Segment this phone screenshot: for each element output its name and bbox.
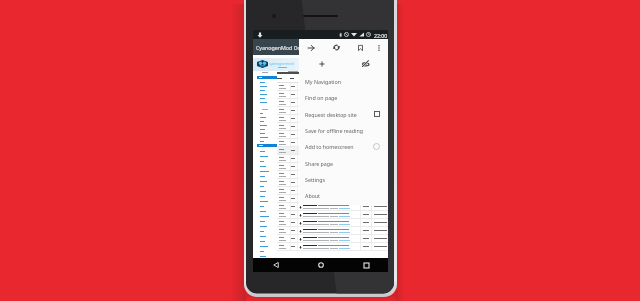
- button[interactable]: [277, 155, 388, 162]
- staticText: Add to homescreen: [305, 143, 354, 150]
- button[interactable]: Home: [313, 258, 329, 272]
- button[interactable]: Request desktop site: [299, 106, 388, 122]
- button[interactable]: [277, 171, 388, 178]
- button[interactable]: Add to homescreen: [299, 138, 388, 154]
- button[interactable]: [277, 195, 388, 202]
- button[interactable]: Share page: [299, 155, 388, 171]
- staticText: Settings: [305, 176, 326, 183]
- button[interactable]: Incognito tab: [357, 56, 375, 72]
- button[interactable]: [277, 163, 388, 170]
- button[interactable]: [277, 203, 388, 210]
- button[interactable]: [277, 187, 388, 194]
- button[interactable]: [277, 147, 388, 154]
- button[interactable]: [277, 91, 388, 98]
- button[interactable]: About: [299, 187, 388, 203]
- staticText: About: [305, 192, 321, 199]
- button[interactable]: Settings: [299, 171, 388, 187]
- button[interactable]: Back: [268, 258, 284, 272]
- button[interactable]: Forward: [302, 39, 320, 56]
- button[interactable]: [277, 99, 388, 106]
- staticText: My Navigation: [305, 78, 341, 85]
- button[interactable]: Recent apps: [358, 258, 374, 272]
- button[interactable]: CyanogenMod Downloads: [253, 39, 388, 55]
- button[interactable]: [277, 123, 388, 130]
- staticText: Find on page: [305, 94, 338, 101]
- button[interactable]: [277, 219, 388, 226]
- button[interactable]: [277, 131, 388, 138]
- button[interactable]: Refresh: [327, 39, 345, 56]
- button[interactable]: More options: [372, 39, 386, 56]
- staticText: cyanogenmod: [269, 61, 294, 66]
- button[interactable]: [277, 139, 388, 146]
- staticText: Share page: [305, 160, 334, 167]
- button[interactable]: [277, 115, 388, 122]
- button[interactable]: My Navigation: [299, 73, 388, 89]
- button[interactable]: Bookmark: [351, 39, 369, 56]
- button[interactable]: Save for offline reading: [299, 122, 388, 138]
- staticText: Request desktop site: [305, 111, 357, 118]
- button[interactable]: [277, 227, 388, 234]
- button[interactable]: [277, 179, 388, 186]
- button[interactable]: [277, 107, 388, 114]
- button[interactable]: New tab: [313, 56, 331, 72]
- button[interactable]: [277, 243, 388, 250]
- button[interactable]: [277, 211, 388, 218]
- button[interactable]: [277, 83, 388, 90]
- button[interactable]: Find on page: [299, 89, 388, 105]
- staticText: 22:00: [374, 32, 388, 39]
- staticText: CyanogenMod Downloads: [256, 44, 322, 51]
- button[interactable]: [277, 235, 388, 242]
- staticText: Save for offline reading: [305, 127, 363, 134]
